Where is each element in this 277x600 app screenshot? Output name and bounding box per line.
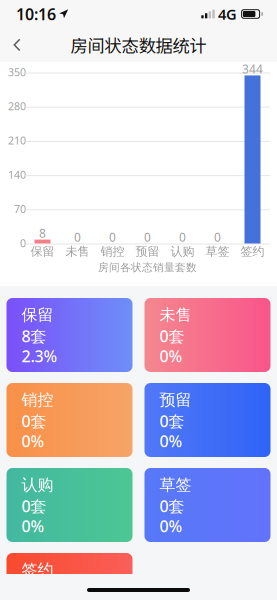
staticText: 0套: [159, 410, 184, 432]
staticText: 4G: [218, 4, 237, 24]
staticText: 销控: [21, 390, 53, 410]
button[interactable]: 返回: [2, 29, 32, 61]
staticText: 预留: [135, 244, 159, 259]
staticText: 0%: [159, 345, 182, 367]
staticText: 8套: [21, 325, 46, 347]
button[interactable]: 认购: [6, 468, 132, 542]
staticText: 2.3%: [21, 345, 57, 367]
button[interactable]: 保留: [6, 298, 132, 372]
staticText: 10:16: [16, 3, 56, 25]
staticText: 保留: [21, 305, 53, 325]
staticText: 0套: [21, 495, 46, 517]
staticText: 0套: [159, 325, 184, 347]
button[interactable]: 草签: [144, 468, 270, 542]
staticText: 签约: [240, 244, 264, 259]
staticText: 0: [109, 229, 116, 245]
staticText: 0%: [21, 430, 44, 452]
staticText: 210: [8, 133, 26, 147]
staticText: 140: [8, 167, 26, 182]
staticText: 0%: [21, 515, 44, 537]
button[interactable]: 销控: [6, 383, 132, 457]
button[interactable]: 签约: [6, 553, 132, 600]
staticText: 保留: [30, 244, 54, 259]
staticText: 0: [74, 229, 81, 245]
staticText: 认购: [21, 475, 53, 495]
staticText: 未售: [159, 305, 191, 325]
staticText: 房间状态数据统计: [70, 32, 206, 58]
staticText: 0%: [159, 430, 182, 452]
staticText: 280: [8, 99, 26, 113]
staticText: 签约: [21, 560, 53, 580]
staticText: 草签: [205, 244, 229, 259]
staticText: 预留: [159, 390, 191, 410]
staticText: 0套: [159, 495, 184, 517]
staticText: 0: [214, 229, 221, 245]
staticText: 350: [8, 65, 26, 79]
staticText: 草签: [159, 475, 191, 495]
staticText: 认购: [170, 244, 194, 259]
staticText: 房间各状态销量套数: [98, 261, 197, 274]
button[interactable]: 未售: [144, 298, 270, 372]
staticText: 70: [14, 202, 26, 216]
staticText: 0套: [21, 410, 46, 432]
button[interactable]: 预留: [144, 383, 270, 457]
staticText: 0: [20, 236, 26, 250]
staticText: 8: [39, 225, 46, 241]
button[interactable]: 签约: [6, 553, 132, 574]
staticText: 销控: [100, 244, 124, 259]
staticText: 未售: [65, 244, 89, 259]
staticText: 0%: [159, 515, 182, 537]
staticText: 0: [144, 229, 151, 245]
staticText: 344: [242, 61, 263, 77]
staticText: 0: [179, 229, 186, 245]
